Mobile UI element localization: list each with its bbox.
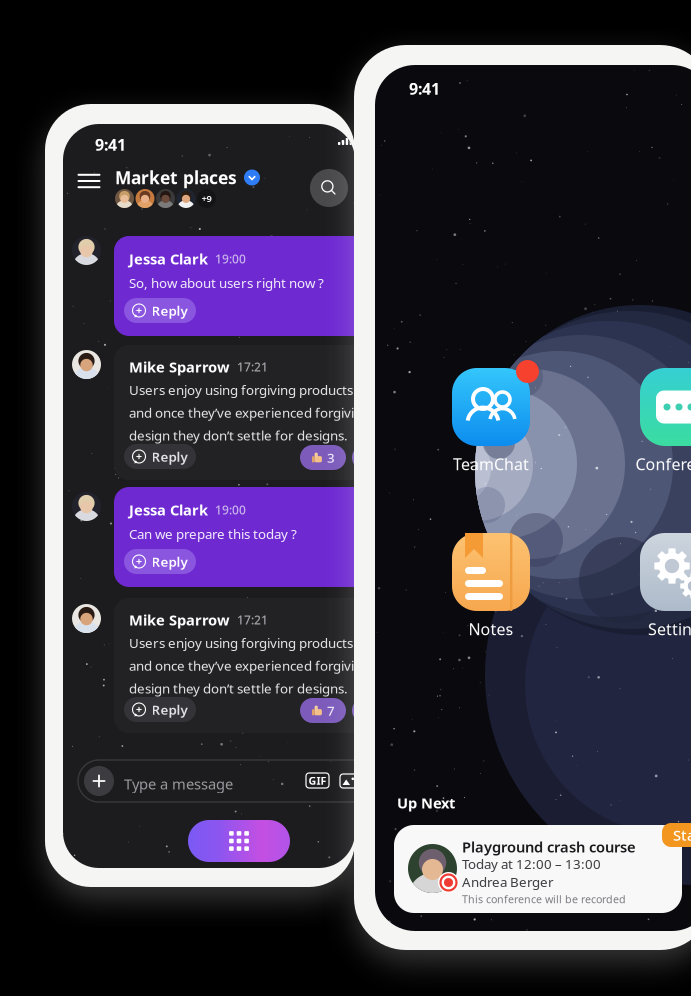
staticText: GIF	[308, 773, 326, 788]
button[interactable]: Thumbs up 2	[352, 445, 398, 470]
staticText: Reply	[151, 553, 187, 570]
staticText: 7	[327, 702, 335, 719]
button[interactable]: Thumbs up 3	[300, 445, 346, 470]
staticText: Users enjoy using forgiving products	[129, 634, 353, 652]
button[interactable]: Reply	[124, 298, 196, 323]
button[interactable]: Playground crash course	[394, 825, 682, 913]
button[interactable]: Reply	[124, 549, 196, 574]
staticText: 17:21	[237, 359, 268, 375]
staticText: Reply	[151, 302, 187, 319]
staticText: design they don’t settle for designs.	[129, 426, 348, 444]
staticText: Conference	[635, 453, 691, 475]
button[interactable]: Conference	[640, 368, 691, 476]
staticText: Settings	[648, 618, 691, 640]
button[interactable]: Search	[310, 169, 348, 207]
staticText: +9	[201, 192, 211, 205]
staticText: 19:00	[215, 502, 246, 518]
staticText: Up Next	[397, 793, 455, 812]
staticText: 17:21	[237, 612, 268, 628]
staticText: and once they’ve experienced forgiving	[129, 404, 370, 421]
staticText: Notes	[468, 618, 513, 640]
button[interactable]: Menu	[74, 168, 104, 194]
button[interactable]: Type a message	[78, 760, 378, 802]
staticText: design they don’t settle for designs.	[129, 679, 348, 697]
staticText: Mike Sparrow	[129, 357, 230, 376]
staticText: Today at 12:00 – 13:00	[462, 855, 601, 873]
staticText: Users enjoy using forgiving products	[129, 381, 353, 399]
staticText: Type a message	[124, 774, 233, 793]
button[interactable]: Thumbs up 2	[352, 698, 398, 723]
button[interactable]: Settings	[640, 533, 691, 641]
staticText: Playground crash course	[462, 837, 636, 856]
button[interactable]: TeamChat	[452, 368, 552, 476]
staticText: Reply	[151, 448, 187, 465]
staticText: Jessa Clark	[129, 249, 208, 268]
staticText: Reply	[151, 701, 187, 718]
staticText: Mike Sparrow	[129, 610, 230, 629]
staticText: 3	[327, 449, 335, 466]
button[interactable]: Notes	[452, 533, 552, 641]
staticText: Start	[673, 825, 691, 845]
staticText: Market places	[115, 166, 237, 189]
button[interactable]: All apps	[188, 820, 290, 862]
staticText: This conference will be recorded	[462, 892, 626, 906]
button[interactable]: Reply	[124, 444, 196, 469]
staticText: Can we prepare this today ?	[129, 525, 297, 543]
staticText: So, how about users right now ?	[129, 274, 324, 292]
staticText: Andrea Berger	[462, 873, 554, 891]
staticText: and once they’ve experienced forgiving	[129, 657, 370, 674]
button[interactable]: Thumbs up 7	[300, 698, 346, 723]
staticText: 19:00	[215, 251, 246, 267]
staticText: 9:41	[409, 78, 440, 99]
staticText: 9:41	[95, 134, 126, 155]
staticText: Jessa Clark	[129, 500, 208, 519]
staticText: TeamChat	[453, 453, 529, 475]
button[interactable]: Reply	[124, 697, 196, 722]
